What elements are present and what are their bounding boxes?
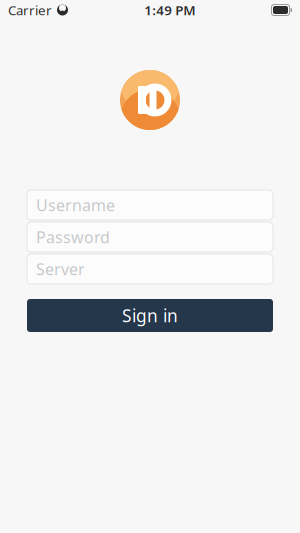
- staticText: 1:49 PM: [144, 1, 195, 19]
- button[interactable]: Sign in: [27, 299, 273, 332]
- button[interactable]: Server: [27, 254, 273, 284]
- button[interactable]: Username: [27, 190, 273, 220]
- staticText: Server: [36, 258, 85, 280]
- button[interactable]: Password: [27, 222, 273, 252]
- staticText: Password: [36, 226, 110, 248]
- staticText: Carrier: [8, 1, 52, 19]
- staticText: Sign in: [122, 304, 178, 327]
- staticText: Username: [36, 194, 115, 216]
